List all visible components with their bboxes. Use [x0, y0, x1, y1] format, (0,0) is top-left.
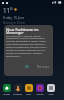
- staticText: 11°: [3, 6, 13, 14]
- button[interactable]: Nie teraz: [35, 64, 51, 70]
- staticText: Files: [26, 93, 31, 96]
- button[interactable]: Phone: [3, 84, 11, 92]
- staticText: Contacts: [13, 93, 22, 96]
- staticText: Neue Funktionen im Messenger: [6, 27, 39, 35]
- staticText: Meeting in 30 min: [3, 21, 26, 25]
- staticText: Aby korzystać z nowych funkcji wiadomośc…: [6, 34, 51, 58]
- staticText: Friday, 16 June: [3, 16, 25, 20]
- staticText: Phone: [3, 93, 10, 96]
- button[interactable]: Contacts: [14, 84, 22, 92]
- staticText: OK: [25, 65, 29, 69]
- button[interactable]: OK: [23, 64, 31, 70]
- button[interactable]: Apps: [47, 84, 55, 92]
- button[interactable]: Photos: [36, 84, 44, 92]
- staticText: Nie teraz: [37, 65, 49, 69]
- button[interactable]: Files: [25, 84, 33, 92]
- staticText: Photos: [36, 93, 44, 96]
- staticText: Apps: [48, 93, 54, 96]
